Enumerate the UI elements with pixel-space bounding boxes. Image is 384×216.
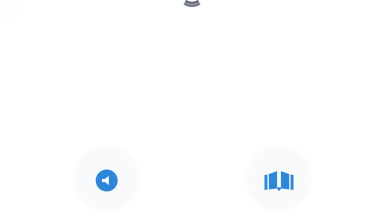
button[interactable]: Library — [248, 147, 309, 208]
button[interactable]: Mute — [76, 147, 137, 208]
